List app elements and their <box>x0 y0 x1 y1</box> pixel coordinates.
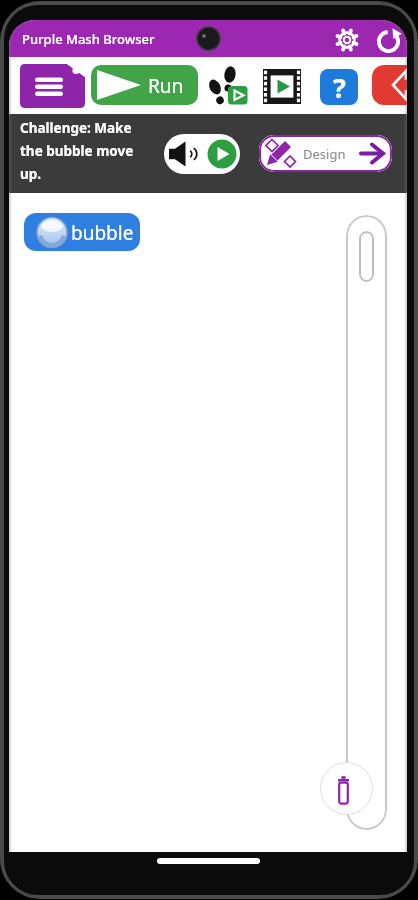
staticText: bubble <box>71 220 134 246</box>
button[interactable] <box>359 231 374 282</box>
button[interactable] <box>164 134 240 174</box>
button[interactable] <box>205 62 253 110</box>
button[interactable] <box>263 69 301 104</box>
button[interactable] <box>376 28 402 54</box>
button[interactable]: Design <box>259 135 392 172</box>
staticText: Purple Mash Browser <box>22 30 155 48</box>
staticText: Run <box>148 73 184 99</box>
button[interactable]: Run <box>91 65 198 105</box>
button[interactable] <box>20 64 85 108</box>
staticText: Challenge: Make the bubble move up. <box>20 119 134 183</box>
staticText: Design <box>303 145 346 163</box>
button[interactable]: bubble <box>24 213 140 251</box>
button[interactable] <box>372 65 407 105</box>
button[interactable] <box>332 25 362 55</box>
staticText: ? <box>333 69 346 105</box>
button[interactable]: ? <box>320 69 358 105</box>
button[interactable] <box>320 762 373 815</box>
